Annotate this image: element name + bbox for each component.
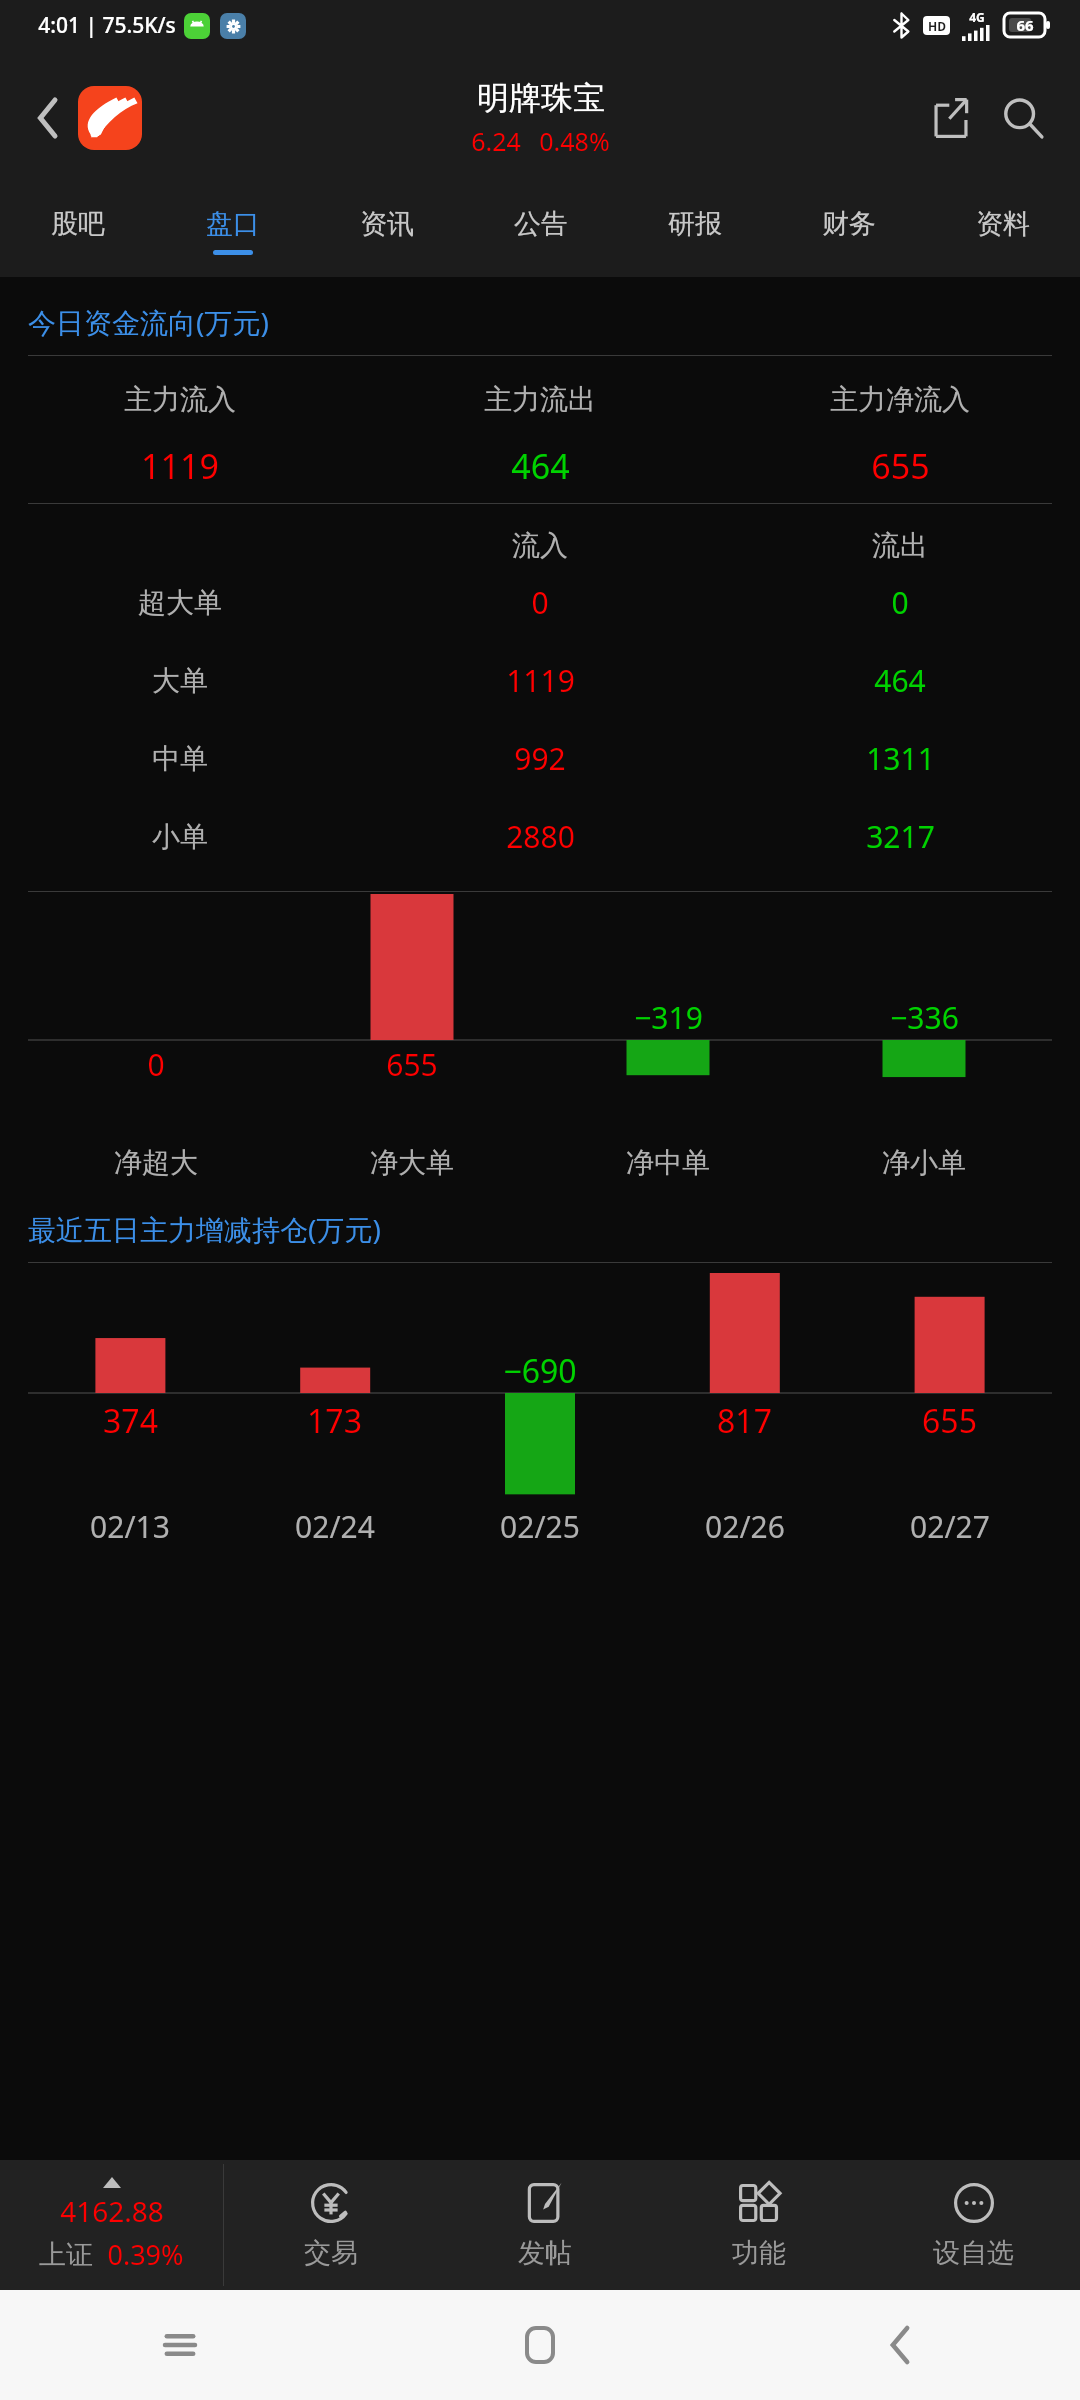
staticText: −319 <box>634 997 703 1038</box>
button[interactable]: Back <box>22 92 74 144</box>
button[interactable]: 发帖 <box>438 2160 652 2290</box>
staticText: 6.24 <box>471 124 521 158</box>
staticText: 功能 <box>732 2236 786 2270</box>
staticText: 上证 <box>39 2238 93 2272</box>
staticText: 02/24 <box>295 1506 375 1547</box>
staticText: 0.48% <box>539 124 610 158</box>
staticText: 资讯 <box>360 207 414 241</box>
button[interactable]: 中单 <box>0 719 1080 797</box>
staticText: 交易 <box>304 2236 358 2270</box>
button[interactable]: 研报 <box>618 185 772 277</box>
staticText: 0 <box>147 1044 165 1085</box>
staticText: 公告 <box>514 207 568 241</box>
staticText: HD <box>928 18 946 34</box>
staticText: 02/25 <box>500 1506 580 1547</box>
staticText: 最近五日主力增减持仓(万元) <box>28 1210 381 1248</box>
staticText: 173 <box>307 1399 362 1443</box>
button[interactable]: 功能 <box>652 2160 866 2290</box>
staticText: 464 <box>874 660 926 701</box>
staticText: 今日资金流向(万元) <box>28 303 269 341</box>
staticText: 资料 <box>976 207 1030 241</box>
staticText: 2880 <box>506 816 575 857</box>
staticText: −336 <box>890 997 959 1038</box>
staticText: 4:01 | 75.5K/s <box>38 11 176 40</box>
staticText: 374 <box>103 1399 158 1443</box>
staticText: 中单 <box>152 741 208 776</box>
staticText: 主力流出 <box>484 382 596 417</box>
staticText: 0.39% <box>107 2236 184 2273</box>
staticText: 超大单 <box>138 585 222 620</box>
button[interactable]: Back <box>720 2290 1080 2400</box>
staticText: 992 <box>514 738 566 779</box>
button[interactable]: 股吧 <box>0 185 155 277</box>
button[interactable]: 大单 <box>0 641 1080 719</box>
button[interactable]: 公告 <box>464 185 618 277</box>
staticText: 0 <box>891 582 909 623</box>
staticText: 4G <box>969 9 985 25</box>
staticText: 财务 <box>822 207 876 241</box>
staticText: −690 <box>503 1349 577 1393</box>
button[interactable]: Home <box>360 2290 720 2400</box>
staticText: 464 <box>511 443 570 489</box>
button[interactable]: Recents <box>0 2290 360 2400</box>
button[interactable]: 交易 <box>224 2160 438 2290</box>
button[interactable]: 财务 <box>772 185 926 277</box>
staticText: 净超大 <box>114 1145 198 1180</box>
staticText: 主力净流入 <box>830 382 970 417</box>
staticText: 发帖 <box>518 2236 572 2270</box>
staticText: 流出 <box>872 528 928 563</box>
button[interactable]: 4162.88 <box>0 2160 223 2290</box>
button[interactable]: 主力流入 <box>0 382 360 489</box>
staticText: 1311 <box>866 738 935 779</box>
staticText: 净大单 <box>370 1145 454 1180</box>
staticText: 3217 <box>866 816 935 857</box>
staticText: 1119 <box>141 443 219 489</box>
staticText: 02/27 <box>910 1506 990 1547</box>
staticText: 4162.88 <box>60 2192 164 2230</box>
button[interactable]: Search <box>992 87 1054 149</box>
staticText: 净小单 <box>882 1145 966 1180</box>
staticText: 0 <box>531 582 549 623</box>
staticText: 股吧 <box>51 207 105 241</box>
staticText: 净中单 <box>626 1145 710 1180</box>
button[interactable]: 资讯 <box>310 185 464 277</box>
button[interactable]: 资料 <box>926 185 1080 277</box>
staticText: 02/26 <box>705 1506 785 1547</box>
button[interactable]: App logo <box>78 86 142 150</box>
button[interactable]: 设自选 <box>866 2160 1080 2290</box>
staticText: 研报 <box>668 207 722 241</box>
staticText: 655 <box>871 443 930 489</box>
staticText: 盘口 <box>206 207 260 241</box>
staticText: 大单 <box>152 663 208 698</box>
staticText: 02/13 <box>90 1506 170 1547</box>
staticText: 817 <box>717 1399 772 1443</box>
staticText: 66 <box>1016 15 1034 35</box>
button[interactable]: Share <box>920 87 982 149</box>
staticText: 明牌珠宝 <box>477 78 605 118</box>
staticText: 主力流入 <box>124 382 236 417</box>
button[interactable]: 主力净流入 <box>720 382 1080 489</box>
button[interactable]: 超大单 <box>0 563 1080 641</box>
staticText: 设自选 <box>933 2236 1014 2270</box>
staticText: 流入 <box>512 528 568 563</box>
button[interactable]: 小单 <box>0 797 1080 875</box>
button[interactable]: 主力流出 <box>360 382 720 489</box>
staticText: 655 <box>922 1399 977 1443</box>
button[interactable]: 盘口 <box>155 185 310 277</box>
staticText: 1119 <box>506 660 575 701</box>
staticText: 小单 <box>152 819 208 854</box>
staticText: 655 <box>386 1044 438 1085</box>
